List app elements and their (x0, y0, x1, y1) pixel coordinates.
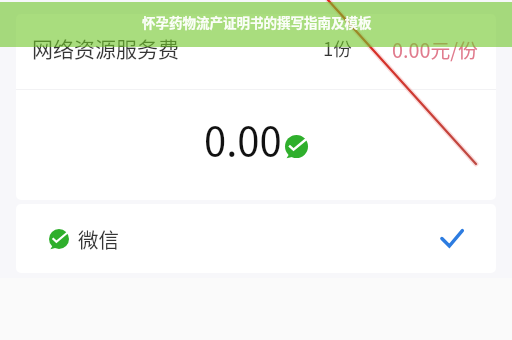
button[interactable]: 网络资源服务费 (16, 14, 496, 89)
button[interactable]: 微信 (16, 204, 496, 273)
staticText: 0.00元/份 (392, 35, 478, 64)
staticText: 怀孕药物流产证明书的撰写指南及模板 (142, 12, 372, 32)
staticText: 1份 (323, 35, 352, 62)
staticText: 微信 (78, 224, 119, 254)
staticText: 网络资源服务费 (32, 33, 179, 63)
other: Selected (441, 228, 463, 250)
staticText: 0.00 (204, 110, 282, 168)
